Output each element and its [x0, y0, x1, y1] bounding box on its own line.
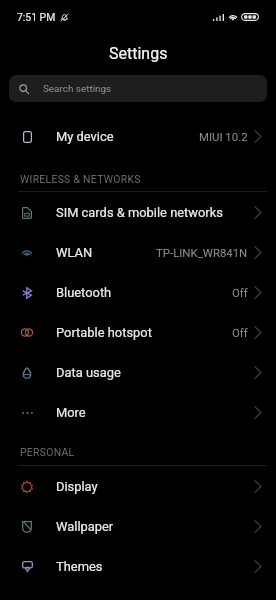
button[interactable]: WLAN [0, 232, 276, 272]
button[interactable]: Wallpaper [0, 506, 276, 546]
staticText: Search settings [43, 83, 112, 95]
staticText: Portable hotspot [56, 325, 152, 340]
staticText: Settings [109, 44, 168, 63]
button[interactable]: SIM cards & mobile networks [0, 192, 276, 232]
button[interactable]: Portable hotspot [0, 312, 276, 352]
staticText: Display [56, 479, 98, 494]
staticText: Off [232, 286, 248, 299]
staticText: MIUI 10.2 [199, 130, 248, 143]
button[interactable]: Display [0, 466, 276, 506]
staticText: Off [232, 326, 248, 339]
staticText: More [56, 405, 86, 420]
staticText: WLAN [56, 245, 93, 260]
staticText: PERSONAL [20, 446, 75, 458]
staticText: Bluetooth [56, 285, 112, 300]
button[interactable]: My device [0, 116, 276, 156]
button[interactable]: Themes [0, 546, 276, 586]
button[interactable]: Search settings [9, 75, 267, 102]
staticText: WIRELESS & NETWORKS [20, 173, 141, 185]
staticText: Data usage [56, 365, 121, 380]
button[interactable]: Bluetooth [0, 272, 276, 312]
staticText: Themes [56, 559, 103, 574]
staticText: SIM cards & mobile networks [56, 205, 223, 220]
button[interactable]: Data usage [0, 352, 276, 392]
staticText: TP-LINK_WR841N [156, 246, 248, 259]
button[interactable]: More [0, 392, 276, 432]
staticText: Wallpaper [56, 519, 114, 534]
staticText: 7:51 PM [17, 11, 56, 23]
staticText: My device [56, 129, 114, 144]
